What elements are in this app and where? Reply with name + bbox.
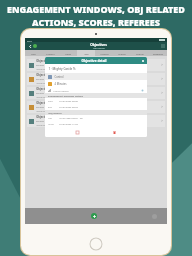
- button[interactable]: Back: [27, 43, 33, 49]
- staticText: Objective 3 name: [36, 87, 59, 91]
- button[interactable]: More: [152, 214, 157, 219]
- staticText: score 00 · referee name: [36, 124, 61, 127]
- staticText: Score: [48, 123, 54, 126]
- staticText: Objective 5 name: [36, 115, 59, 119]
- staticText: >: [161, 77, 163, 81]
- staticText: ENGAGEMENT WINDOWS, OBJ RELATED: [7, 3, 185, 15]
- staticText: score 00 · referee name: [36, 68, 61, 71]
- staticText: Objective 1 name: [36, 59, 59, 63]
- button[interactable]: 4 Minutes: [48, 80, 144, 87]
- staticText: >: [161, 63, 163, 67]
- staticText: Players: [46, 52, 55, 55]
- staticText: Ref: [48, 117, 52, 120]
- staticText: Objective 4 name: [36, 101, 59, 105]
- staticText: 4 Minutes: [54, 82, 67, 86]
- button[interactable]: Objective 2 name: [29, 73, 163, 85]
- staticText: Info: [31, 52, 36, 55]
- button[interactable]: Scores: [113, 50, 131, 56]
- staticText: ACTIONS, SCORES, REFEREES: [32, 16, 160, 28]
- button[interactable]: Delete: [111, 129, 118, 136]
- staticText: Scores details: [53, 89, 69, 92]
- staticText: Start: [48, 100, 53, 103]
- button[interactable]: Add: [91, 213, 97, 219]
- staticText: OBJ Signals: [48, 111, 62, 114]
- button[interactable]: Referees: [149, 50, 167, 56]
- button[interactable]: Objective 4 name: [29, 101, 163, 113]
- button[interactable]: Control: [48, 73, 144, 80]
- staticText: >: [161, 105, 163, 109]
- staticText: Obj: [84, 52, 89, 55]
- button[interactable]: Home: [89, 237, 103, 251]
- staticText: Objective detail: [81, 59, 107, 63]
- staticText: 9:41: [27, 39, 32, 42]
- staticText: >: [161, 119, 163, 123]
- staticText: score 00 · referee name: [36, 82, 61, 85]
- staticText: 01/01/2024 09:00: [59, 100, 78, 103]
- button[interactable]: Actions: [95, 50, 113, 56]
- staticText: window · related action: [36, 106, 61, 109]
- staticText: Engagement windows details: [48, 94, 83, 97]
- button[interactable]: Events: [131, 50, 149, 56]
- staticText: window · related action: [36, 120, 61, 123]
- button[interactable]: Units: [59, 50, 77, 56]
- staticText: 1 · Mighty Castle %: [48, 67, 76, 71]
- button[interactable]: Edit: [74, 129, 81, 136]
- staticText: 01/01/2024 11:04: [59, 123, 78, 126]
- button[interactable]: Players: [42, 50, 59, 56]
- button[interactable]: Objective 3 name: [29, 87, 163, 99]
- staticText: Control: [54, 75, 64, 79]
- staticText: window · related action: [36, 64, 61, 67]
- staticText: >: [161, 91, 163, 95]
- staticText: Objective 2 name: [36, 73, 59, 77]
- staticText: window · related action: [36, 78, 61, 81]
- button[interactable]: Info: [25, 50, 42, 56]
- button[interactable]: Scores details: [48, 87, 144, 93]
- staticText: Objectives: [90, 43, 107, 47]
- staticText: Actions: [100, 52, 109, 55]
- staticText: Referees: [153, 52, 163, 55]
- staticText: window · related action: [36, 92, 61, 95]
- staticText: score 00 · referee name: [36, 96, 61, 99]
- button[interactable]: Close: [141, 59, 145, 63]
- staticText: End: [48, 106, 52, 109]
- button[interactable]: Objective 5 name: [29, 115, 163, 127]
- staticText: 01/01/2024 09:04: [59, 106, 78, 109]
- staticText: Events: [136, 52, 144, 55]
- staticText: Units: [65, 52, 71, 55]
- staticText: sub header: [93, 47, 105, 50]
- button[interactable]: Obj: [77, 50, 95, 56]
- staticText: 01/01/2024 09:01 · 00: [59, 117, 83, 120]
- staticText: score 00 · referee name: [36, 110, 61, 113]
- button[interactable]: Objective 1 name: [29, 59, 163, 71]
- staticText: Scores: [118, 52, 126, 55]
